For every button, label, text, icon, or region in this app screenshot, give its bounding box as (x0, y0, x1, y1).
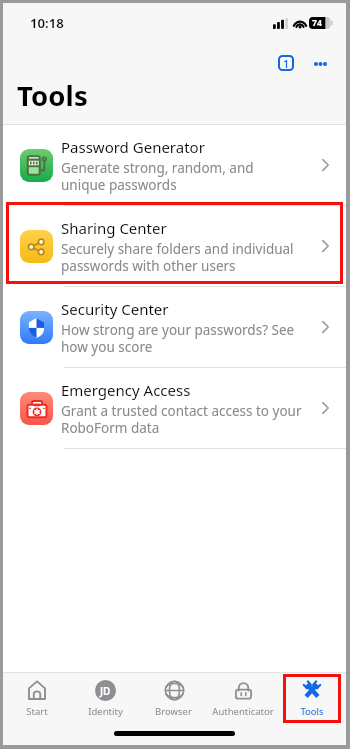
button[interactable]: Authenticator (208, 673, 277, 718)
staticText: Grant a trusted contact access to your R… (61, 402, 302, 437)
button[interactable]: More options (309, 54, 331, 74)
button[interactable]: Tools (277, 673, 346, 718)
staticText: Generate strong, random, and unique pass… (61, 159, 254, 194)
staticText: Sharing Center (61, 218, 167, 238)
staticText: Tools (300, 705, 324, 718)
staticText: Authenticator (212, 705, 274, 718)
staticText: 1 (283, 56, 290, 71)
staticText: Identity (88, 705, 123, 718)
staticText: How strong are your passwords? See how y… (61, 321, 295, 356)
button[interactable]: Password Generator (3, 125, 346, 205)
staticText: 74 (312, 17, 322, 29)
staticText: JD (100, 684, 111, 698)
staticText: Securely share folders and individual pa… (61, 240, 294, 275)
staticText: Browser (155, 705, 192, 718)
staticText: Start (26, 705, 48, 718)
staticText: Security Center (61, 299, 169, 319)
staticText: Tools (17, 77, 88, 114)
button[interactable]: Security Center (3, 287, 346, 367)
button[interactable]: Start (3, 673, 71, 718)
staticText: Password Generator (61, 137, 205, 157)
button[interactable]: 1 (278, 55, 294, 71)
button[interactable]: JD (71, 673, 139, 718)
staticText: 10:18 (30, 14, 64, 32)
button[interactable]: Browser (139, 673, 208, 718)
button[interactable]: Sharing Center (3, 206, 346, 286)
staticText: Emergency Access (61, 380, 191, 400)
button[interactable]: Emergency Access (3, 368, 346, 448)
